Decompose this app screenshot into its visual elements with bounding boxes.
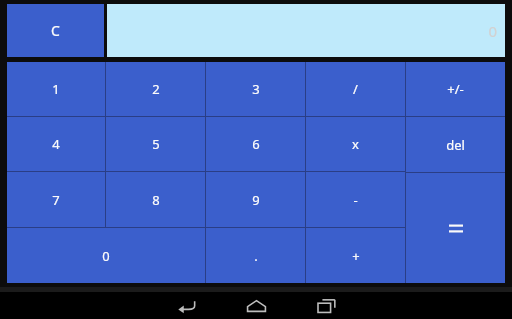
button[interactable]: 8 — [106, 172, 205, 227]
button[interactable]: 6 — [206, 117, 305, 171]
staticText: 4 — [52, 135, 60, 153]
staticText: 0 — [102, 247, 110, 265]
button[interactable]: 7 — [7, 172, 105, 227]
button[interactable]: 9 — [206, 172, 305, 227]
button[interactable]: x — [306, 117, 405, 171]
staticText: + — [352, 247, 360, 265]
button[interactable]: 1 — [7, 62, 105, 116]
staticText: del — [446, 136, 465, 154]
button[interactable]: 0 — [7, 228, 205, 283]
staticText: 0 — [488, 21, 497, 41]
button[interactable]: 4 — [7, 117, 105, 171]
staticText: 9 — [252, 191, 260, 209]
staticText: 5 — [152, 135, 160, 153]
staticText: 1 — [52, 80, 60, 98]
staticText: x — [352, 135, 359, 153]
button[interactable]: Back — [164, 292, 208, 319]
button[interactable]: del — [406, 117, 505, 172]
staticText: 2 — [152, 80, 160, 98]
button[interactable]: Equals — [406, 173, 505, 283]
button[interactable]: C — [7, 4, 104, 57]
staticText: . — [254, 247, 258, 265]
button[interactable]: +/- — [406, 62, 505, 116]
staticText: - — [353, 191, 358, 209]
button[interactable]: 3 — [206, 62, 305, 116]
button[interactable]: . — [206, 228, 305, 283]
button[interactable]: / — [306, 62, 405, 116]
button[interactable]: Home — [234, 292, 278, 319]
staticText: 3 — [252, 80, 260, 98]
button[interactable]: Recent apps — [304, 292, 348, 319]
button[interactable]: + — [306, 228, 405, 283]
button[interactable]: 2 — [106, 62, 205, 116]
staticText: C — [51, 21, 60, 40]
staticText: / — [353, 80, 358, 98]
staticText: 8 — [152, 191, 160, 209]
button[interactable]: 5 — [106, 117, 205, 171]
button[interactable]: - — [306, 172, 405, 227]
staticText: 6 — [252, 135, 260, 153]
staticText: +/- — [447, 80, 464, 98]
staticText: 7 — [52, 191, 60, 209]
